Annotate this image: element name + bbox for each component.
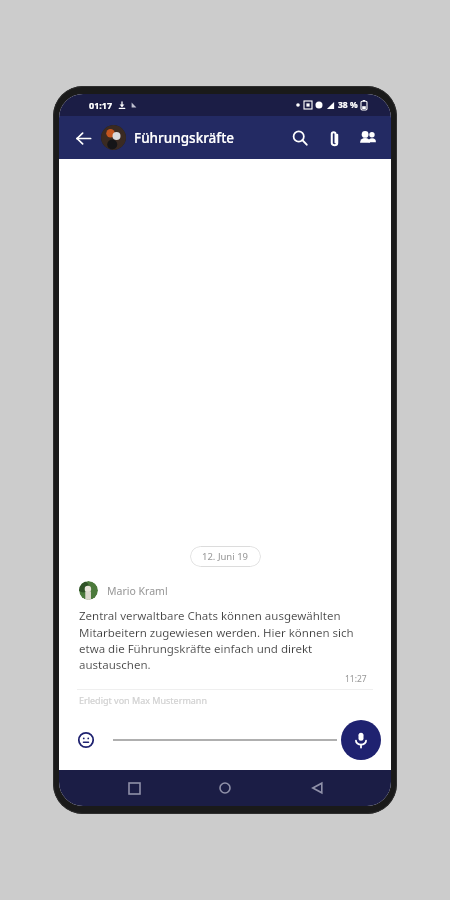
staticText: 01:17 — [89, 99, 113, 111]
staticText: Führungskräfte — [134, 129, 283, 147]
staticText: Erledigt von Max Mustermann — [79, 694, 207, 706]
button[interactable]: Emoji — [73, 727, 99, 753]
staticText: 38 % — [338, 99, 358, 111]
button[interactable]: Search — [283, 121, 317, 155]
button[interactable]: Members — [351, 121, 385, 155]
button[interactable]: Zentral verwaltbare Chats können ausgewä… — [59, 608, 391, 672]
button[interactable]: Back — [300, 771, 334, 805]
button[interactable]: Recent apps — [117, 771, 151, 805]
button[interactable] — [113, 725, 337, 755]
staticText: Mario Kraml — [107, 584, 168, 598]
button[interactable]: Back — [67, 122, 99, 154]
button[interactable]: Home — [208, 771, 242, 805]
button[interactable]: Attach file — [317, 121, 351, 155]
button[interactable]: Group avatar — [101, 125, 126, 150]
button[interactable]: Record voice message — [341, 720, 381, 760]
button[interactable]: Mario Kraml avatar — [79, 581, 98, 600]
staticText: 12. Juni 19 — [202, 550, 249, 563]
button[interactable]: 12. Juni 19 — [190, 546, 261, 567]
staticText: 11:27 — [345, 673, 367, 685]
